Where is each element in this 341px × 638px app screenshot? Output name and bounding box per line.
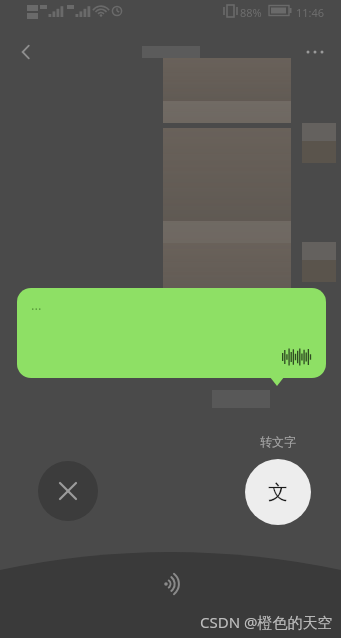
staticText: 11:46 — [296, 5, 325, 20]
button[interactable]: ... — [17, 288, 326, 378]
staticText: 转文字 — [253, 434, 303, 449]
button[interactable]: Back — [8, 34, 44, 70]
button[interactable]: More options — [297, 34, 333, 70]
staticText: ... — [31, 296, 42, 314]
button[interactable]: Cancel — [38, 461, 98, 521]
staticText: 88% — [240, 5, 262, 20]
staticText: CSDN @橙色的天空 — [200, 612, 333, 632]
staticText: 文 — [268, 480, 288, 505]
button[interactable]: 文 — [245, 459, 311, 525]
